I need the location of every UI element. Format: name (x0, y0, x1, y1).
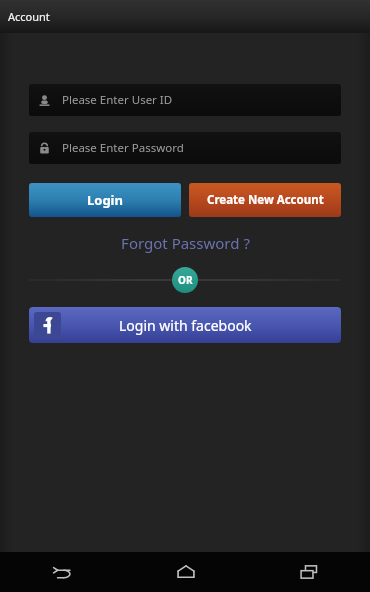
button[interactable]: Create New Account (189, 183, 341, 217)
button[interactable]: Login (29, 183, 181, 217)
button[interactable]: Recent apps (247, 552, 370, 592)
staticText: Please Enter Password (62, 140, 184, 156)
button[interactable]: Back (0, 552, 124, 592)
staticText: Forgot Password ? (121, 233, 250, 253)
button[interactable]: Please Enter Password (29, 132, 341, 164)
staticText: OR (178, 273, 193, 287)
button[interactable]: Forgot Password ? (111, 230, 260, 256)
staticText: Account (8, 9, 50, 24)
button[interactable]: Please Enter User ID (29, 84, 341, 116)
button[interactable]: Login with facebook (29, 307, 341, 343)
button[interactable]: Home (124, 552, 247, 592)
staticText: Please Enter User ID (62, 92, 173, 108)
staticText: Login (87, 191, 123, 209)
staticText: Login with facebook (119, 316, 252, 335)
staticText: Create New Account (207, 192, 324, 208)
